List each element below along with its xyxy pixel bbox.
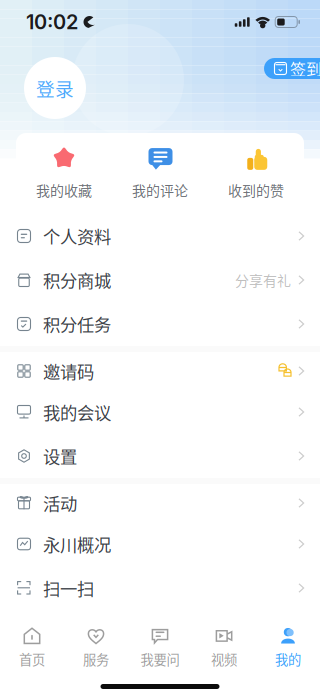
staticText: 服务 [83,649,109,669]
staticText: 10:02 [26,10,78,34]
staticText: 个人资料 [43,223,111,249]
button[interactable]: 我的收藏 [16,133,112,208]
staticText: 我的评论 [132,180,188,200]
button[interactable]: 邀请码 [0,352,320,390]
button[interactable]: 个人资料 [0,214,320,258]
staticText: 签到 [290,57,320,80]
button[interactable]: 服务 [64,610,128,672]
staticText: 首页 [19,649,45,669]
staticText: 收到的赞 [228,180,284,200]
button[interactable]: 我的会议 [0,390,320,434]
staticText: 登录 [36,74,74,101]
button[interactable]: 签到 [264,58,320,79]
staticText: 邀请码 [43,358,94,384]
button[interactable]: 设置 [0,434,320,478]
staticText: 视频 [211,649,237,669]
staticText: 积分任务 [43,311,111,337]
button[interactable]: 视频 [192,610,256,672]
button[interactable]: 登录 [24,57,86,119]
button[interactable]: 首页 [0,610,64,672]
button[interactable]: 积分任务 [0,302,320,346]
staticText: 我的收藏 [36,180,92,200]
staticText: 永川概况 [43,531,111,557]
staticText: 我要问 [140,649,179,669]
button[interactable]: 我的评论 [112,133,208,208]
staticText: 我的 [275,649,301,669]
staticText: 扫一扫 [43,575,94,601]
staticText: 活动 [43,490,77,516]
button[interactable]: 扫一扫 [0,566,320,610]
button[interactable]: 收到的赞 [208,133,304,208]
staticText: 我的会议 [43,399,111,425]
staticText: 分享有礼 [235,270,291,290]
button[interactable]: 我要问 [128,610,192,672]
staticText: 设置 [43,443,77,469]
button[interactable]: 永川概况 [0,522,320,566]
staticText: 积分商城 [43,267,111,293]
button[interactable]: 我的 [256,610,320,672]
button[interactable]: 活动 [0,484,320,522]
button[interactable]: 积分商城 [0,258,320,302]
